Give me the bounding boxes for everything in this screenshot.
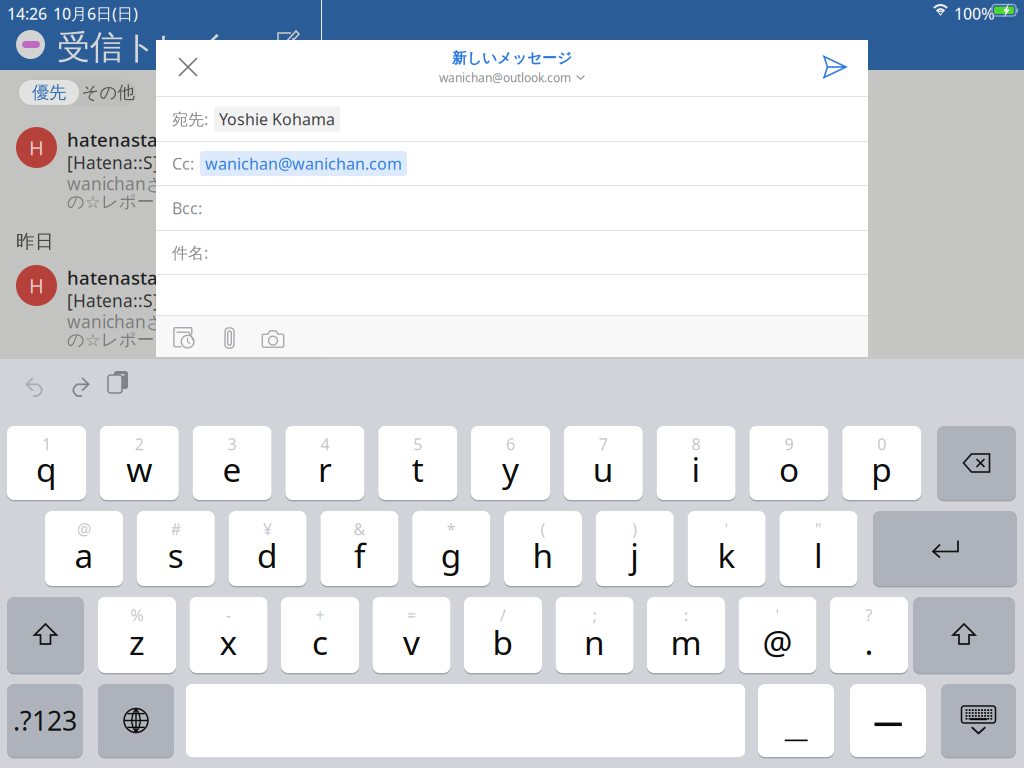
staticText: [Hatena::S] w bbox=[67, 151, 178, 174]
button[interactable]: Shift bbox=[913, 597, 1015, 673]
staticText: 6 bbox=[506, 433, 515, 455]
staticText: - bbox=[226, 604, 231, 626]
staticText: = bbox=[407, 604, 416, 626]
button[interactable]: 8 bbox=[657, 426, 736, 500]
button[interactable]: ? bbox=[830, 597, 908, 673]
button[interactable]: Camera bbox=[254, 318, 292, 359]
button[interactable]: Attach file bbox=[211, 317, 249, 358]
staticText: 3 bbox=[228, 433, 237, 455]
button[interactable]: ' bbox=[738, 597, 816, 673]
button[interactable]: H bbox=[0, 251, 321, 355]
button[interactable]: 0 bbox=[842, 426, 921, 500]
staticText: t bbox=[412, 447, 424, 491]
staticText: Cc: bbox=[172, 153, 194, 174]
staticText: n bbox=[584, 620, 605, 664]
staticText: 100% bbox=[954, 3, 995, 24]
staticText: # bbox=[171, 518, 181, 540]
staticText: f bbox=[354, 533, 365, 577]
button[interactable]: " bbox=[779, 511, 857, 586]
button[interactable]: 3 bbox=[193, 426, 272, 500]
staticText: i bbox=[692, 447, 701, 491]
staticText: ＿ bbox=[779, 705, 812, 746]
staticText: @ bbox=[762, 620, 792, 664]
staticText: ( bbox=[540, 518, 545, 540]
staticText: & bbox=[353, 518, 365, 540]
button[interactable]: Close bbox=[166, 45, 210, 89]
staticText: + bbox=[315, 604, 324, 626]
staticText: ' bbox=[725, 518, 729, 540]
button[interactable]: & bbox=[320, 511, 398, 586]
staticText: ; bbox=[592, 604, 596, 626]
button[interactable]: 5 bbox=[378, 426, 457, 500]
staticText: 4 bbox=[320, 433, 329, 455]
button[interactable]: 件名: bbox=[156, 231, 868, 274]
button[interactable]: ¥ bbox=[229, 511, 307, 586]
button[interactable]: Redo bbox=[63, 370, 97, 404]
staticText: hatenastar bbox=[67, 265, 166, 290]
staticText: / bbox=[500, 604, 506, 626]
staticText: .?123 bbox=[13, 703, 77, 738]
button[interactable]: Paste bbox=[108, 371, 142, 405]
button[interactable] bbox=[758, 684, 834, 757]
staticText: j bbox=[630, 533, 639, 577]
staticText: 2 bbox=[135, 433, 144, 455]
staticText: q bbox=[36, 447, 57, 491]
button[interactable]: 7 bbox=[564, 426, 643, 500]
button[interactable]: @ bbox=[45, 511, 123, 586]
button[interactable] bbox=[850, 684, 926, 757]
staticText: 優先 bbox=[32, 82, 66, 103]
button[interactable]: Shift bbox=[7, 597, 84, 673]
button[interactable]: - bbox=[189, 597, 267, 673]
button[interactable]: Send bbox=[813, 45, 857, 89]
button[interactable]: = bbox=[372, 597, 450, 673]
staticText: 受信トレイ bbox=[57, 27, 225, 68]
staticText: wanichanさん bbox=[67, 310, 182, 333]
button[interactable]: ( bbox=[504, 511, 582, 586]
button[interactable]: Delete bbox=[937, 426, 1016, 500]
staticText: ー bbox=[871, 705, 904, 746]
button[interactable]: Bcc: bbox=[156, 186, 868, 230]
button[interactable]: 1 bbox=[7, 426, 86, 500]
button[interactable]: Numbers bbox=[7, 684, 83, 757]
button[interactable]: ' bbox=[688, 511, 766, 586]
button[interactable]: 9 bbox=[749, 426, 828, 500]
button[interactable]: % bbox=[98, 597, 176, 673]
staticText: * bbox=[447, 518, 456, 540]
button[interactable]: + bbox=[281, 597, 359, 673]
staticText: y bbox=[502, 447, 519, 491]
staticText: @ bbox=[77, 518, 91, 540]
button[interactable]: Cc: bbox=[156, 142, 868, 185]
button[interactable]: 4 bbox=[285, 426, 364, 500]
button[interactable]: 宛先: bbox=[156, 97, 868, 141]
staticText: hatenastar bbox=[67, 127, 166, 152]
button[interactable]: Schedule bbox=[165, 317, 203, 358]
button[interactable]: * bbox=[412, 511, 490, 586]
staticText: c bbox=[312, 620, 328, 664]
staticText: m bbox=[670, 620, 701, 664]
button[interactable]: ) bbox=[596, 511, 674, 586]
button[interactable]: 2 bbox=[100, 426, 179, 500]
button[interactable]: ; bbox=[555, 597, 633, 673]
staticText: d bbox=[257, 533, 278, 577]
staticText: その他 bbox=[81, 82, 134, 103]
button[interactable]: Return bbox=[873, 511, 1017, 586]
button[interactable]: : bbox=[647, 597, 725, 673]
button[interactable]: Undo bbox=[18, 370, 52, 404]
staticText: : bbox=[684, 604, 688, 626]
staticText: ¥ bbox=[263, 518, 272, 540]
button[interactable]: # bbox=[137, 511, 215, 586]
staticText: u bbox=[593, 447, 614, 491]
staticText: Bcc: bbox=[172, 197, 202, 219]
button[interactable]: Hide keyboard bbox=[941, 684, 1016, 757]
staticText: の☆レポート bbox=[67, 191, 172, 212]
button[interactable]: / bbox=[464, 597, 542, 673]
staticText: p bbox=[871, 447, 892, 491]
button[interactable]: Compose bbox=[268, 22, 308, 58]
button[interactable]: H bbox=[0, 113, 321, 217]
button[interactable]: 6 bbox=[471, 426, 550, 500]
button[interactable]: Next keyboard bbox=[98, 684, 174, 757]
staticText: 宛先: bbox=[172, 108, 208, 130]
staticText: wanichan@outlook.com bbox=[439, 69, 571, 85]
staticText: [Hatena::S] w bbox=[67, 289, 178, 312]
